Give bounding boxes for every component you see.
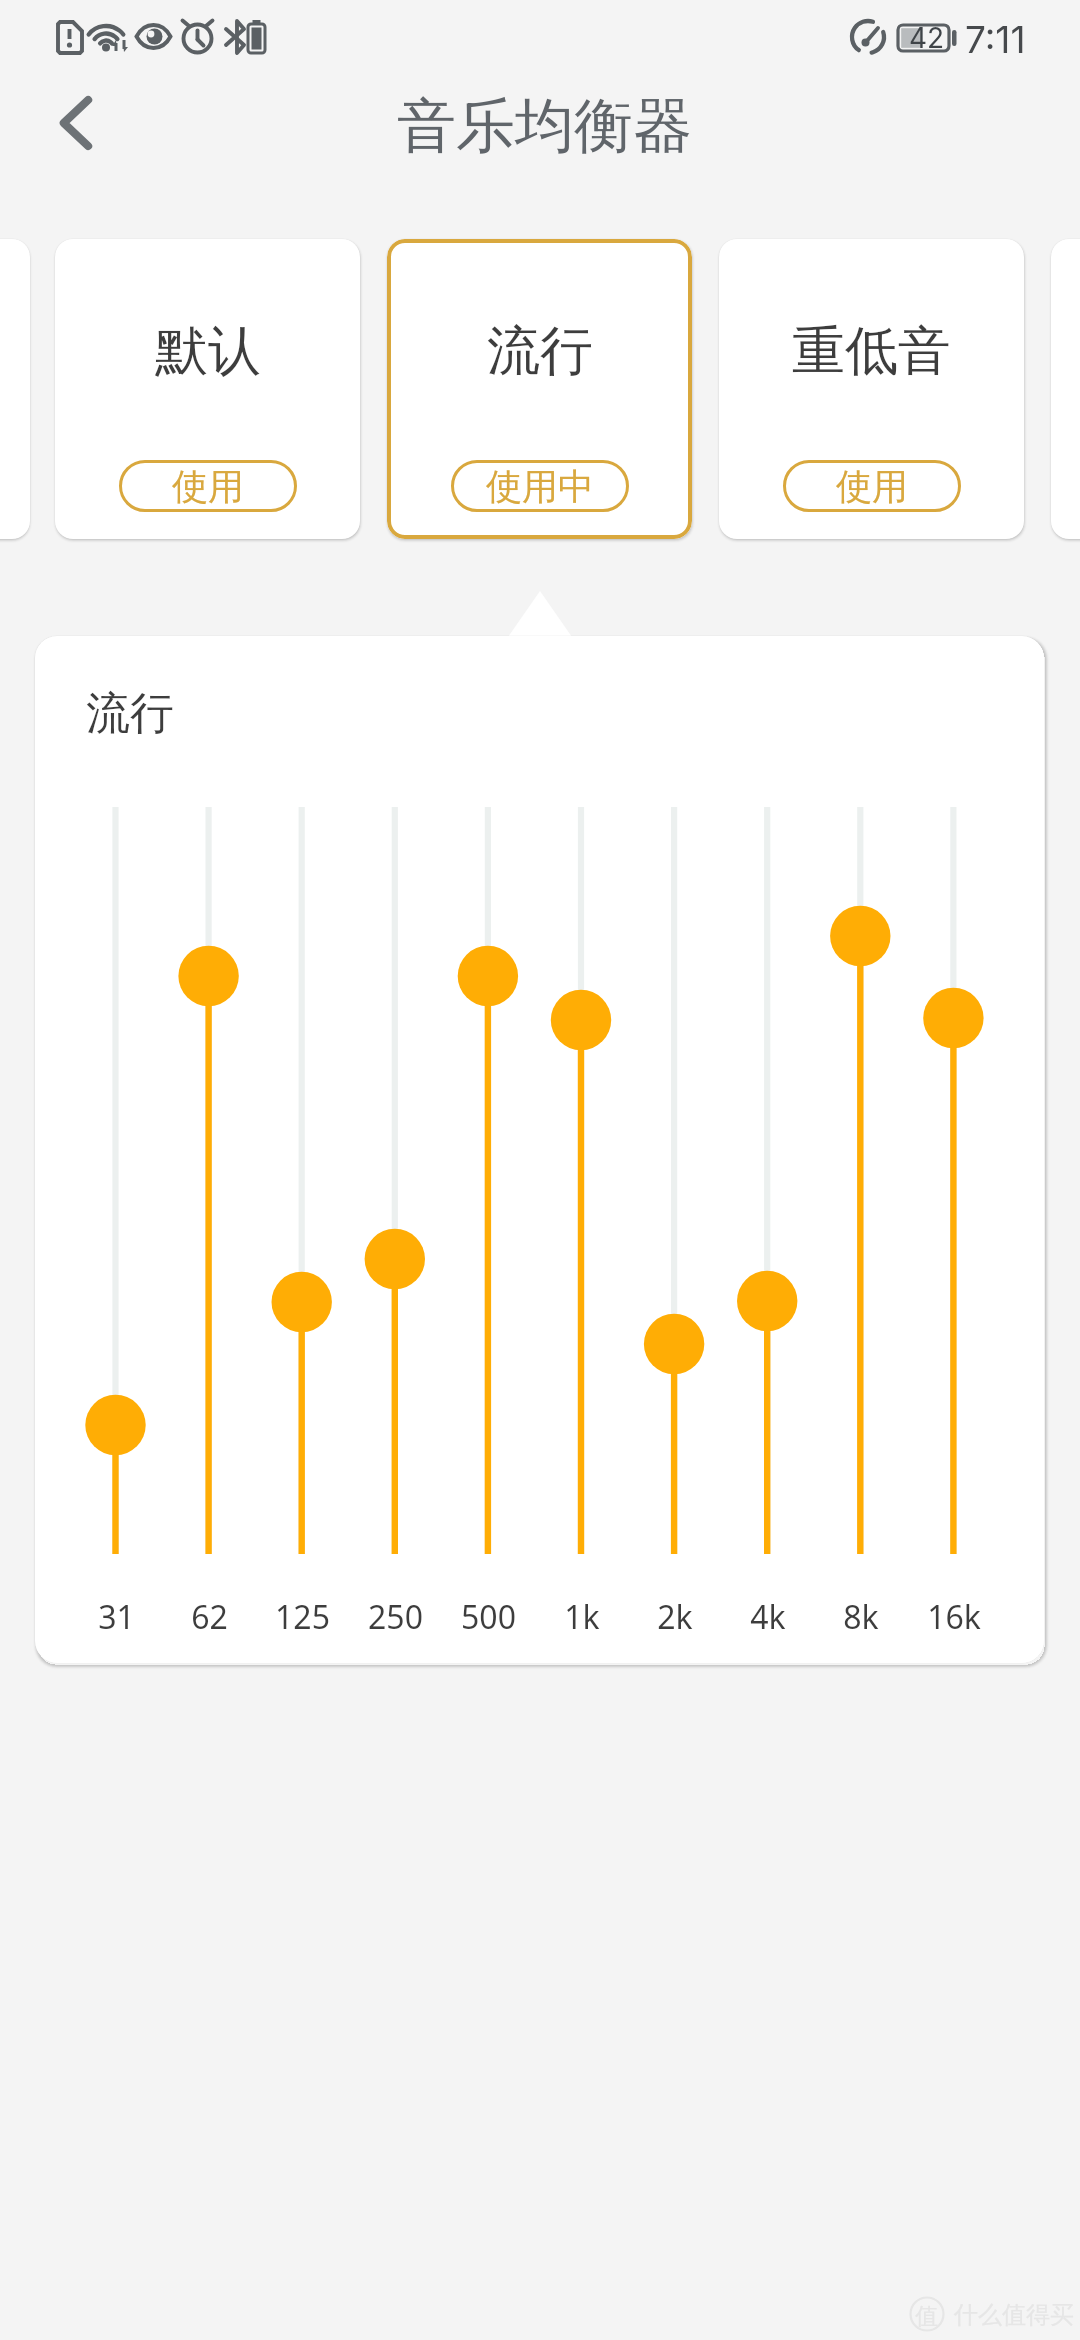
button[interactable]: 31 Hz band [70, 807, 162, 1554]
staticText: 流行 [487, 318, 593, 385]
staticText: 16k [927, 1595, 981, 1639]
staticText: 31 [98, 1595, 135, 1639]
staticText: 4k [750, 1595, 786, 1639]
button[interactable]: 使用 [119, 460, 297, 512]
staticText: 1k [564, 1595, 600, 1639]
button[interactable]: Back [27, 73, 127, 173]
staticText: 62 [191, 1595, 228, 1639]
staticText: 7:11 [965, 17, 1026, 62]
staticText: 使用中 [486, 464, 594, 509]
staticText: 125 [275, 1595, 330, 1639]
button[interactable]: 2k Hz band [628, 807, 720, 1554]
button[interactable]: 4k Hz band [721, 807, 813, 1554]
button[interactable]: 500 Hz band [442, 807, 534, 1554]
staticText: 流行 [86, 686, 174, 741]
staticText: 8k [843, 1595, 879, 1639]
button[interactable]: 8k Hz band [814, 807, 906, 1554]
button[interactable]: 使用 [783, 460, 961, 512]
staticText: 音乐均衡器 [397, 89, 692, 163]
staticText: 使用 [172, 464, 244, 509]
button[interactable]: 默认 [55, 239, 360, 539]
staticText: 使用 [836, 464, 908, 509]
staticText: 500 [461, 1595, 516, 1639]
staticText: 什么值得买 [954, 2300, 1074, 2330]
button[interactable]: 125 Hz band [256, 807, 348, 1554]
button[interactable]: 使用中 [451, 460, 629, 512]
button[interactable]: 流行 [387, 239, 692, 539]
staticText: 默认 [155, 318, 261, 385]
button[interactable]: 62 Hz band [163, 807, 255, 1554]
button[interactable]: 1k Hz band [535, 807, 627, 1554]
staticText: 重低音 [792, 318, 951, 385]
staticText: 值 [915, 2302, 938, 2331]
staticText: 42 [909, 21, 945, 55]
staticText: 250 [368, 1595, 423, 1639]
button[interactable]: 16k Hz band [907, 807, 999, 1554]
button[interactable]: 250 Hz band [349, 807, 441, 1554]
staticText: 2k [657, 1595, 693, 1639]
button[interactable]: 重低音 [719, 239, 1024, 539]
